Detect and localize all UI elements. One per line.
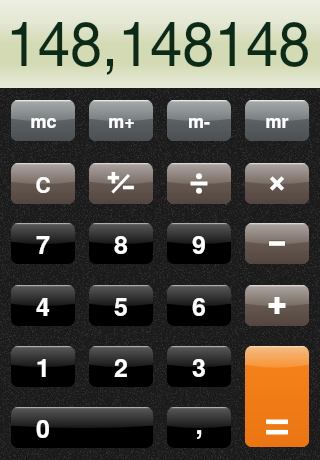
button[interactable]: Equals bbox=[245, 346, 309, 447]
staticText: mc bbox=[30, 108, 57, 134]
button[interactable]: 2 bbox=[89, 346, 153, 387]
staticText: 7 bbox=[36, 226, 50, 262]
button[interactable]: Plus minus bbox=[89, 163, 153, 204]
button[interactable]: 4 bbox=[11, 285, 75, 326]
button[interactable]: mr bbox=[245, 100, 309, 141]
button[interactable]: Plus bbox=[245, 285, 309, 326]
staticText: mr bbox=[265, 108, 289, 134]
staticText: 6 bbox=[192, 288, 206, 324]
staticText: 148,148148 bbox=[6, 0, 310, 83]
staticText: 3 bbox=[192, 349, 206, 385]
button[interactable]: Minus bbox=[245, 223, 309, 264]
staticText: m- bbox=[188, 108, 210, 134]
button[interactable]: Clear bbox=[11, 163, 75, 204]
button[interactable]: Multiply bbox=[245, 163, 309, 204]
staticText: 2 bbox=[114, 349, 128, 385]
button[interactable]: m+ bbox=[89, 100, 153, 141]
button[interactable]: 8 bbox=[89, 223, 153, 264]
staticText: m+ bbox=[108, 108, 135, 134]
staticText: 0 bbox=[36, 410, 50, 446]
button[interactable]: 3 bbox=[167, 346, 231, 387]
button[interactable]: m- bbox=[167, 100, 231, 141]
button[interactable]: Zero bbox=[11, 407, 153, 448]
button[interactable]: Comma bbox=[167, 407, 231, 448]
staticText: 8 bbox=[114, 226, 128, 262]
button[interactable]: Divide bbox=[167, 163, 231, 204]
staticText: C bbox=[35, 169, 51, 199]
staticText: 5 bbox=[114, 288, 128, 324]
staticText: 9 bbox=[192, 226, 206, 262]
button[interactable]: 9 bbox=[167, 223, 231, 264]
button[interactable]: 5 bbox=[89, 285, 153, 326]
staticText: , bbox=[195, 407, 203, 442]
button[interactable]: mc bbox=[11, 100, 75, 141]
button[interactable]: 1 bbox=[11, 346, 75, 387]
button[interactable]: 7 bbox=[11, 223, 75, 264]
staticText: 4 bbox=[36, 288, 50, 324]
button[interactable]: 6 bbox=[167, 285, 231, 326]
staticText: 1 bbox=[36, 349, 50, 385]
